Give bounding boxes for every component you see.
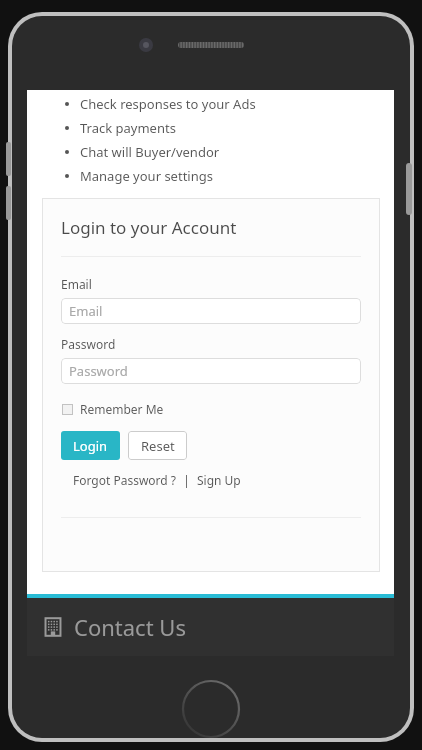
button[interactable]: Manage your settings bbox=[27, 164, 394, 188]
staticText: Check responses to your Ads bbox=[80, 95, 256, 113]
button[interactable]: Reset bbox=[128, 431, 187, 460]
button[interactable]: Track payments bbox=[27, 116, 394, 140]
staticText: Track payments bbox=[80, 119, 176, 137]
staticText: Password bbox=[61, 336, 116, 352]
staticText: Reset bbox=[141, 437, 175, 455]
staticText: Chat will Buyer/vendor bbox=[80, 143, 220, 161]
button[interactable]: Remember Me bbox=[61, 399, 165, 419]
button[interactable]: Login bbox=[61, 431, 120, 460]
button[interactable]: Chat will Buyer/vendor bbox=[27, 140, 394, 164]
staticText: Login bbox=[73, 437, 108, 455]
staticText: Email bbox=[61, 276, 92, 292]
staticText: Sign Up bbox=[197, 472, 241, 488]
button[interactable]: Password bbox=[61, 358, 361, 384]
button[interactable]: Forgot Password ? bbox=[73, 472, 177, 488]
other: Contact Us bbox=[42, 616, 64, 638]
staticText: Forgot Password ? bbox=[73, 472, 177, 488]
button[interactable]: Check responses to your Ads bbox=[27, 92, 394, 116]
staticText: | bbox=[177, 472, 197, 488]
other: Home bbox=[181, 679, 241, 739]
button[interactable]: Email bbox=[61, 298, 361, 324]
staticText: Password bbox=[69, 362, 128, 380]
button[interactable]: Sign Up bbox=[197, 472, 241, 488]
staticText: Email bbox=[69, 302, 103, 320]
staticText: Remember Me bbox=[80, 401, 164, 417]
staticText: Manage your settings bbox=[80, 167, 213, 185]
staticText: Login to your Account bbox=[61, 216, 237, 239]
staticText: Contact Us bbox=[74, 612, 186, 642]
button[interactable]: Contact Us bbox=[27, 598, 394, 656]
